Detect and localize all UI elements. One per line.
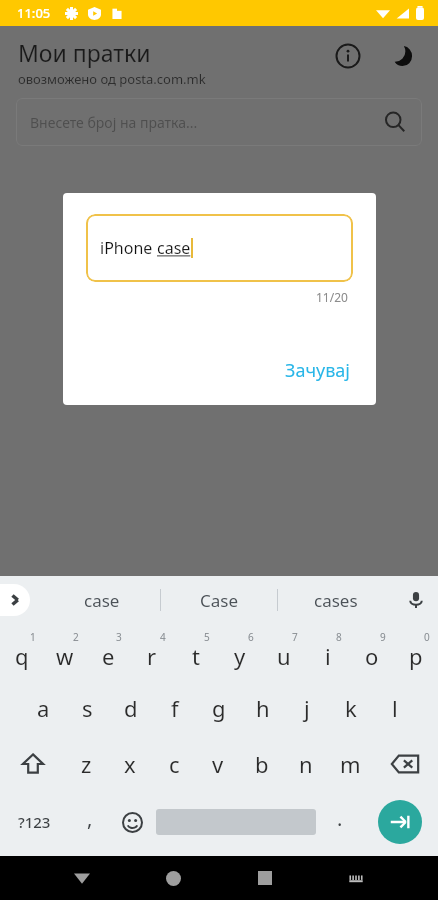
button[interactable]: x <box>108 736 152 792</box>
staticText: iPhone <box>100 237 157 259</box>
button[interactable]: Home <box>151 856 195 900</box>
button[interactable]: . <box>318 792 361 852</box>
button[interactable]: r <box>130 624 174 680</box>
staticText: f <box>171 693 179 723</box>
staticText: e <box>102 641 115 671</box>
staticText: n <box>299 749 313 779</box>
button[interactable]: g <box>197 680 241 736</box>
staticText: , <box>87 805 93 832</box>
staticText: 6 <box>248 630 254 644</box>
button[interactable]: l <box>373 680 417 736</box>
button[interactable]: q <box>0 624 43 680</box>
staticText: z <box>81 749 92 779</box>
button[interactable]: t <box>174 624 218 680</box>
staticText: Зачувај <box>285 358 350 383</box>
button[interactable]: Зачувај <box>273 352 362 389</box>
staticText: r <box>147 641 157 671</box>
button[interactable]: Enter <box>378 800 422 844</box>
staticText: 2 <box>73 630 79 644</box>
staticText: m <box>340 749 361 779</box>
staticText: t <box>192 641 200 671</box>
staticText: g <box>212 693 226 723</box>
button[interactable]: ?123 <box>0 792 68 852</box>
button[interactable]: e <box>86 624 130 680</box>
staticText: y <box>234 641 246 671</box>
staticText: d <box>124 693 138 723</box>
staticText: 1 <box>30 630 36 644</box>
button[interactable]: Внесете број на пратка... <box>16 98 422 146</box>
staticText: i <box>325 641 331 671</box>
staticText: 8 <box>336 630 342 644</box>
button[interactable]: f <box>153 680 197 736</box>
staticText: w <box>56 641 74 671</box>
staticText: 0 <box>424 630 430 644</box>
button[interactable]: h <box>241 680 285 736</box>
button[interactable]: w <box>43 624 86 680</box>
button[interactable]: y <box>218 624 262 680</box>
staticText: 7 <box>292 630 298 644</box>
button[interactable]: n <box>284 736 328 792</box>
button[interactable]: k <box>329 680 373 736</box>
button[interactable]: Emoji <box>111 792 154 852</box>
button[interactable]: u <box>262 624 306 680</box>
button[interactable]: Toggle dark mode <box>380 34 424 78</box>
staticText: 5 <box>204 630 210 644</box>
staticText: case <box>84 589 120 612</box>
staticText: 11/20 <box>316 289 348 305</box>
staticText: u <box>277 641 291 671</box>
button[interactable]: v <box>196 736 240 792</box>
button[interactable]: Backspace <box>372 736 438 792</box>
staticText: 9 <box>380 630 386 644</box>
button[interactable]: cases <box>278 576 394 624</box>
button[interactable]: z <box>65 736 108 792</box>
staticText: o <box>365 641 379 671</box>
staticText: b <box>255 749 269 779</box>
staticText: 11:05 <box>17 4 51 22</box>
staticText: k <box>345 693 357 723</box>
button[interactable]: a <box>21 680 65 736</box>
button[interactable]: Voice input <box>394 578 438 622</box>
button[interactable]: c <box>152 736 196 792</box>
button[interactable]: case <box>44 576 160 624</box>
staticText: q <box>15 641 29 671</box>
button[interactable]: , <box>68 792 111 852</box>
staticText: овозможено од posta.com.mk <box>18 70 206 88</box>
staticText: j <box>304 693 310 723</box>
button[interactable]: Shift <box>0 736 65 792</box>
button[interactable]: d <box>109 680 153 736</box>
staticText: cases <box>314 589 358 612</box>
button[interactable]: Info <box>326 34 370 78</box>
button[interactable]: i <box>306 624 350 680</box>
button[interactable]: m <box>328 736 372 792</box>
staticText: p <box>409 641 423 671</box>
staticText: v <box>212 749 224 779</box>
staticText: x <box>124 749 136 779</box>
staticText: s <box>82 693 93 723</box>
staticText: case <box>157 237 191 259</box>
button[interactable]: iPhone <box>86 214 353 282</box>
button[interactable]: b <box>240 736 284 792</box>
staticText: Немате додадено пратки <box>69 246 369 279</box>
staticText: . <box>337 805 343 832</box>
button[interactable]: Case <box>161 576 277 624</box>
staticText: h <box>256 693 270 723</box>
button[interactable]: Switch keyboard <box>334 856 378 900</box>
staticText: a <box>37 693 50 723</box>
staticText: c <box>169 749 180 779</box>
button[interactable]: s <box>65 680 109 736</box>
staticText: l <box>392 693 398 723</box>
button[interactable]: p <box>394 624 438 680</box>
button[interactable]: More suggestions <box>0 584 30 616</box>
staticText: Case <box>200 589 239 612</box>
staticText: ?123 <box>18 812 51 832</box>
staticText: Мои пратки <box>18 37 151 68</box>
staticText: 3 <box>116 630 122 644</box>
button[interactable]: Recents <box>243 856 287 900</box>
button[interactable]: j <box>285 680 329 736</box>
staticText: 4 <box>160 630 166 644</box>
staticText: Внесете број на пратка... <box>30 113 198 132</box>
button[interactable]: Back <box>60 856 104 900</box>
button[interactable]: o <box>350 624 394 680</box>
staticText: Користете го копчето подолу за да <box>101 297 337 316</box>
